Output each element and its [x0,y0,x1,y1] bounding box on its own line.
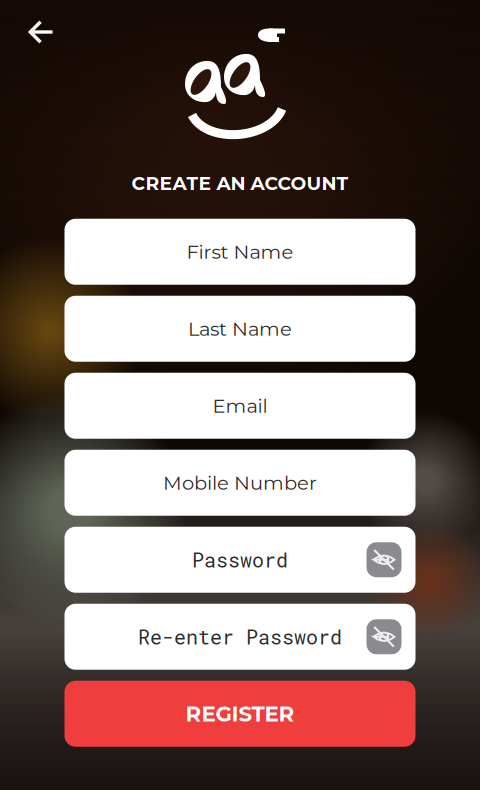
button[interactable]: Re-enter Password [64,604,415,670]
button[interactable]: Email [64,373,415,439]
button[interactable]: REGISTER [64,681,415,747]
button[interactable]: Password [64,527,415,593]
staticText: Re-enter Password [138,624,342,650]
button[interactable]: Mobile Number [64,450,415,516]
staticText: Password [192,547,288,573]
button[interactable]: Last Name [64,296,415,362]
button[interactable]: Back [18,9,64,55]
staticText: CREATE AN ACCOUNT [131,172,348,195]
button[interactable]: First Name [64,219,415,285]
staticText: Email [212,394,267,418]
staticText: Last Name [188,317,292,341]
staticText: REGISTER [185,701,294,727]
staticText: Mobile Number [163,471,317,495]
staticText: First Name [186,240,293,264]
